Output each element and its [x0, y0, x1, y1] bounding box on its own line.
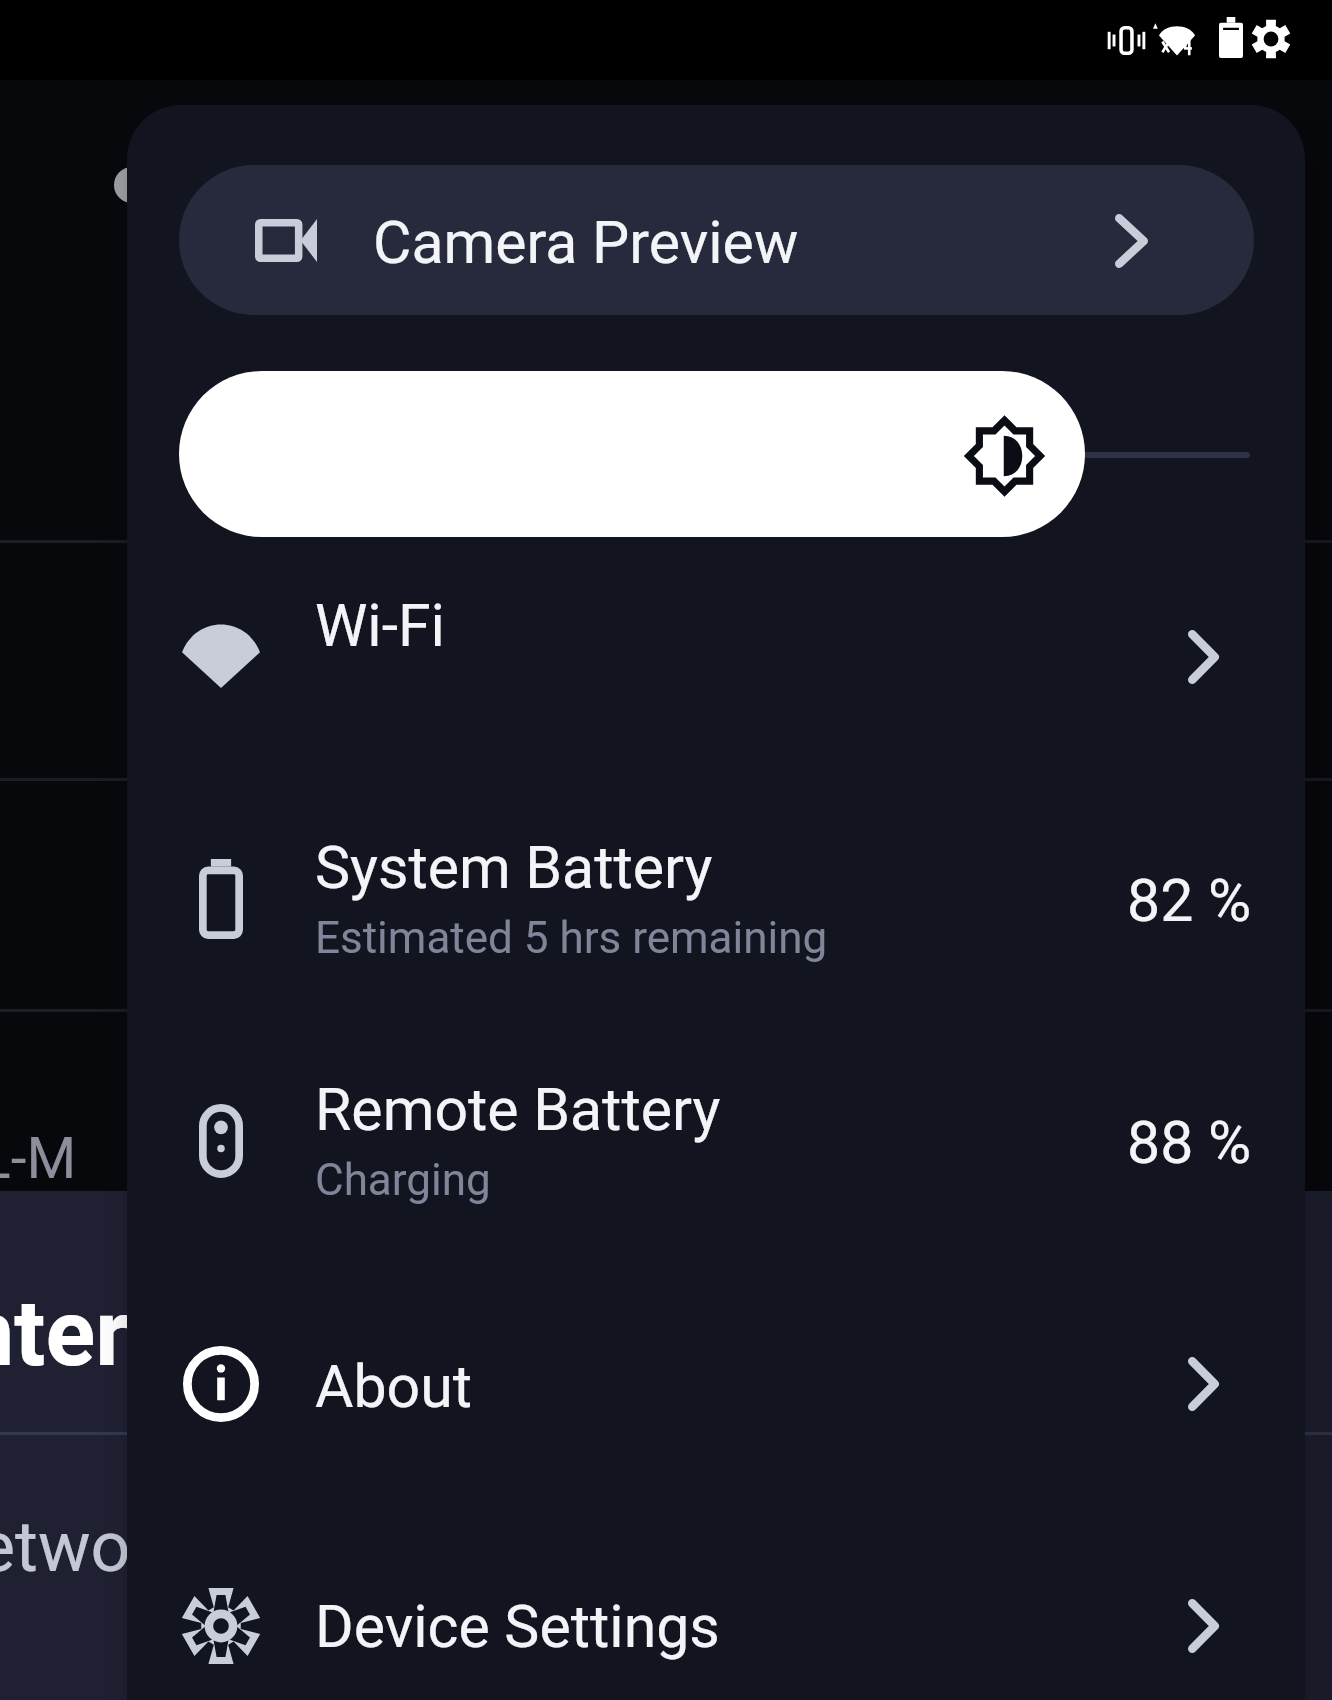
button[interactable]	[127, 1020, 1305, 1262]
button[interactable]	[127, 1263, 1305, 1505]
staticText: 82 %	[1127, 866, 1252, 935]
staticText: Remote Battery	[315, 1075, 721, 1144]
staticText: System Battery	[315, 833, 713, 902]
staticText: Wi-Fi	[315, 591, 445, 660]
staticText: About	[315, 1352, 473, 1421]
staticText: Estimated 5 hrs remaining	[315, 912, 828, 964]
button[interactable]: Camera Preview	[179, 165, 1254, 315]
staticText: Device Settings	[315, 1592, 720, 1661]
staticText: Counterr	[0, 1280, 163, 1388]
button[interactable]	[127, 1505, 1305, 1700]
staticText: Camera Preview	[373, 208, 799, 277]
staticText: PIXEL-M	[0, 1125, 77, 1192]
staticText: Charging	[315, 1154, 491, 1206]
staticText: 88 %	[1127, 1108, 1252, 1177]
button[interactable]	[127, 536, 1305, 778]
staticText: No netwo	[0, 1506, 131, 1588]
button[interactable]	[127, 778, 1305, 1020]
button[interactable]: Brightness	[179, 371, 1085, 537]
